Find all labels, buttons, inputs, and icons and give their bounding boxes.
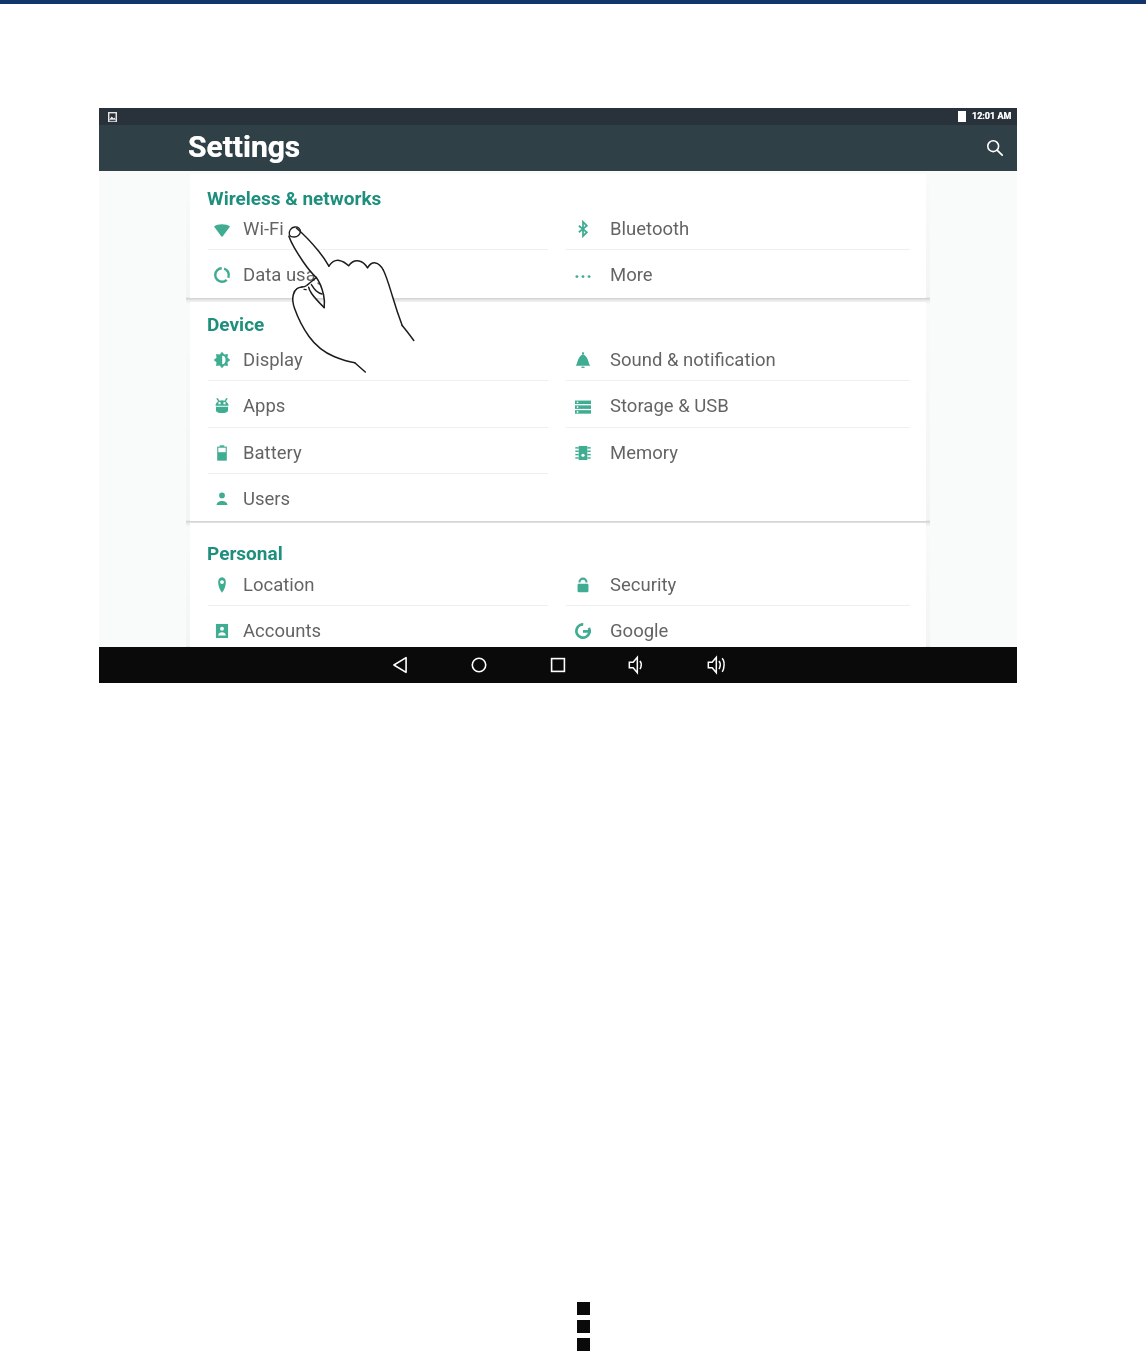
button[interactable]: Wi-Fi <box>190 204 558 250</box>
staticText: Memory <box>610 442 678 464</box>
button[interactable]: Bluetooth <box>558 204 926 250</box>
button[interactable]: Volume up <box>700 649 732 681</box>
button[interactable]: Back <box>384 649 416 681</box>
button[interactable]: Storage & USB <box>558 381 926 427</box>
button[interactable]: Search <box>979 132 1011 164</box>
staticText: Display <box>243 349 303 371</box>
staticText: Google <box>610 620 669 642</box>
staticText: More <box>610 264 653 286</box>
staticText: Location <box>243 574 315 596</box>
button[interactable]: Users <box>190 474 558 520</box>
staticText: Wireless & networks <box>207 187 382 209</box>
staticText: Personal <box>207 542 283 564</box>
staticText: Settings <box>188 129 301 164</box>
staticText: Device <box>207 313 265 335</box>
staticText: 12:01 AM <box>972 111 1012 122</box>
staticText: Accounts <box>243 620 322 642</box>
button[interactable]: Security <box>558 560 926 606</box>
staticText: Wi-Fi <box>243 218 284 240</box>
staticText: Bluetooth <box>610 218 690 240</box>
staticText: Storage & USB <box>610 395 729 417</box>
button[interactable]: Home <box>463 649 495 681</box>
button[interactable]: Apps <box>190 381 558 427</box>
staticText: Apps <box>243 395 286 417</box>
staticText: Battery <box>243 442 302 464</box>
button[interactable]: Battery <box>190 428 558 474</box>
button[interactable]: Accounts <box>190 606 558 652</box>
staticText: Sound & notification <box>610 349 776 371</box>
button[interactable]: Display <box>190 335 558 381</box>
button[interactable]: Volume down <box>621 649 653 681</box>
button[interactable]: Memory <box>558 428 926 474</box>
button[interactable]: Google <box>558 606 926 652</box>
staticText: Data usage <box>243 264 336 286</box>
button[interactable]: More <box>558 250 926 296</box>
button[interactable]: Location <box>190 560 558 606</box>
button[interactable]: Recent apps <box>542 649 574 681</box>
button[interactable]: Data usage <box>190 250 558 296</box>
staticText: Users <box>243 488 291 510</box>
staticText: Security <box>610 574 677 596</box>
button[interactable]: Sound & notification <box>558 335 926 381</box>
